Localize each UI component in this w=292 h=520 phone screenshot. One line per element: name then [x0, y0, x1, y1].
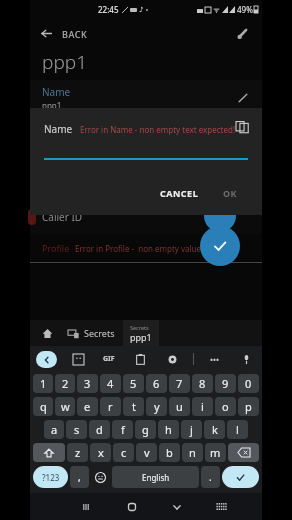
button[interactable]: 7 — [169, 374, 190, 393]
button[interactable]: Secrets — [64, 320, 119, 346]
button[interactable]: i — [192, 397, 213, 416]
button[interactable]: Settings — [230, 21, 254, 45]
staticText: ♪ — [139, 6, 144, 14]
staticText: b — [166, 445, 173, 460]
button[interactable]: 4 — [100, 374, 121, 393]
button[interactable]: h — [158, 420, 179, 439]
button[interactable]: d — [89, 420, 110, 439]
staticText: c — [121, 445, 127, 460]
button[interactable]: 1 — [33, 374, 53, 393]
staticText: d — [96, 422, 103, 437]
button[interactable]: o — [215, 397, 236, 416]
button[interactable]: t — [123, 397, 144, 416]
button[interactable]: Name — [30, 80, 262, 116]
button[interactable]: Clipboard — [130, 349, 150, 369]
staticText: t — [132, 399, 136, 414]
button[interactable]: a — [44, 420, 64, 439]
staticText: r — [108, 399, 113, 414]
button[interactable]: k — [204, 420, 225, 439]
button[interactable]: 9 — [215, 374, 236, 393]
button[interactable]: b — [159, 443, 180, 462]
button[interactable]: q — [33, 397, 53, 416]
button[interactable]: Expand toolbar — [36, 351, 57, 368]
button[interactable]: Emoji — [91, 466, 110, 488]
staticText: ppp1 — [42, 49, 87, 75]
staticText: 4 — [107, 376, 114, 391]
button[interactable]: n — [182, 443, 203, 462]
button[interactable]: Voice input — [236, 349, 256, 369]
button[interactable]: , — [70, 466, 89, 488]
button[interactable]: BACK — [38, 23, 90, 44]
button[interactable]: Home — [109, 493, 154, 520]
staticText: 6 — [153, 376, 160, 391]
button[interactable]: u — [169, 397, 190, 416]
button[interactable]: Hide keyboard — [154, 493, 199, 520]
button[interactable]: Home — [30, 320, 64, 346]
button[interactable]: j — [181, 420, 202, 439]
staticText: h — [165, 422, 172, 437]
button[interactable]: Backspace — [228, 443, 259, 462]
button[interactable]: e — [77, 397, 98, 416]
button[interactable]: Refresh — [204, 200, 236, 232]
staticText: f — [121, 422, 125, 437]
button[interactable]: w — [55, 397, 75, 416]
staticText: 2 — [62, 376, 69, 391]
staticText: l — [236, 422, 239, 437]
staticText: Caller ID — [42, 210, 83, 224]
button[interactable]: 0 — [238, 374, 259, 393]
button[interactable]: OK — [215, 183, 246, 203]
button[interactable]: s — [66, 420, 87, 439]
button[interactable]: l — [227, 420, 248, 439]
button[interactable]: English — [112, 466, 199, 488]
button[interactable]: Copy — [232, 116, 252, 136]
button[interactable]: Save — [200, 226, 240, 266]
button[interactable]: f — [112, 420, 133, 439]
button[interactable]: Caller ID — [30, 200, 262, 234]
staticText: n — [189, 445, 196, 460]
staticText: e — [84, 399, 91, 414]
button[interactable]: x — [90, 443, 111, 462]
button[interactable]: More options — [205, 349, 225, 369]
button[interactable]: 2 — [55, 374, 75, 393]
button[interactable]: m — [205, 443, 226, 462]
button[interactable]: CANCEL — [152, 183, 207, 203]
staticText: 9 — [222, 376, 229, 391]
button[interactable]: v — [136, 443, 157, 462]
button[interactable]: 3 — [77, 374, 98, 393]
button[interactable]: Shift — [33, 443, 65, 462]
staticText: GIF — [103, 354, 115, 364]
button[interactable]: Secrets — [123, 320, 159, 346]
staticText: p — [245, 399, 252, 414]
staticText: ?123 — [42, 472, 60, 483]
staticText: CANCEL — [160, 187, 199, 199]
staticText: 3 — [84, 376, 91, 391]
button[interactable]: Stickers — [68, 349, 88, 369]
staticText: Name — [42, 85, 71, 99]
staticText: ppp1 — [42, 100, 62, 111]
staticText: Error in Profile - non empty value expec… — [75, 243, 238, 254]
button[interactable]: c — [113, 443, 134, 462]
button[interactable]: Edit — [234, 89, 252, 107]
staticText: ••• — [210, 354, 220, 365]
button[interactable]: g — [135, 420, 156, 439]
button[interactable]: z — [67, 443, 88, 462]
button[interactable]: y — [146, 397, 167, 416]
staticText: 49% — [237, 4, 253, 15]
button[interactable]: Switch keyboard — [199, 493, 244, 520]
button[interactable]: ?123 — [33, 466, 68, 488]
button[interactable]: GIF — [99, 349, 119, 369]
staticText: English — [142, 472, 170, 483]
button[interactable]: Enter — [222, 466, 259, 488]
staticText: j — [190, 422, 193, 437]
button[interactable]: Recents — [63, 493, 109, 520]
staticText: Error in Name - non empty text expected! — [80, 124, 236, 135]
staticText: OK — [223, 187, 238, 199]
button[interactable]: p — [238, 397, 259, 416]
staticText: v — [144, 445, 150, 460]
button[interactable]: . — [201, 466, 220, 488]
button[interactable]: Keyboard settings — [162, 349, 182, 369]
button[interactable]: 8 — [192, 374, 213, 393]
button[interactable]: 6 — [146, 374, 167, 393]
button[interactable]: 5 — [123, 374, 144, 393]
button[interactable]: r — [100, 397, 121, 416]
